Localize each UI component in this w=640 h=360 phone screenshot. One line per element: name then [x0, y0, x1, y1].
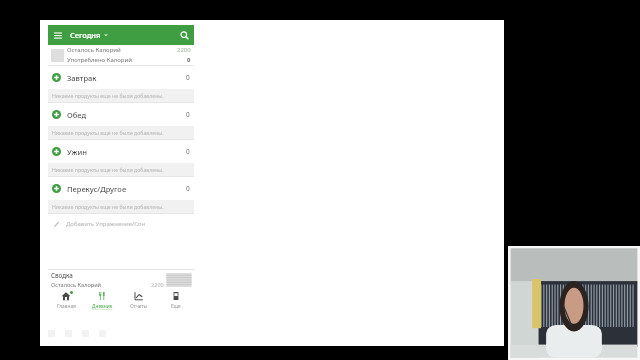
staticText: 2200 [177, 46, 191, 54]
button[interactable]: Сегодня [68, 30, 110, 40]
button[interactable]: Еще [157, 289, 194, 311]
button[interactable]: Главная [48, 289, 84, 311]
button[interactable]: Дневник [84, 289, 120, 311]
staticText: Обед [67, 110, 87, 120]
button[interactable]: Обед [48, 103, 194, 126]
staticText: Дневник [92, 303, 113, 310]
staticText: Употреблено Калорий [67, 56, 132, 64]
staticText: Никакие продукты еще не были добавлены. [52, 92, 164, 99]
staticText: Осталось Калорий [67, 46, 121, 54]
button[interactable]: Добавить Упражнение/Сон [48, 214, 194, 234]
staticText: Добавить Упражнение/Сон [66, 220, 146, 228]
button[interactable]: Сводка [48, 270, 194, 289]
staticText: 0 [187, 56, 191, 64]
button[interactable]: Menu [48, 25, 68, 45]
staticText: 0 [186, 73, 190, 82]
button[interactable]: Отчеты [120, 289, 157, 311]
staticText: Отчеты [130, 303, 148, 310]
staticText: Никакие продукты еще не были добавлены. [52, 129, 164, 136]
staticText: Сводка [51, 271, 73, 279]
staticText: Никакие продукты еще не были добавлены. [52, 166, 164, 173]
staticText: Осталось Калорий [51, 281, 102, 289]
staticText: Еще [171, 303, 181, 310]
button[interactable]: Перекус/Другое [48, 177, 194, 200]
staticText: Сегодня [70, 30, 101, 40]
staticText: Ужин [67, 147, 87, 157]
staticText: Главная [57, 303, 76, 310]
button[interactable]: Ужин [48, 140, 194, 163]
staticText: Никакие продукты еще не были добавлены. [52, 203, 164, 210]
staticText: 2200 [151, 281, 164, 289]
staticText: 0 [186, 110, 190, 119]
button[interactable]: Search [174, 25, 194, 45]
staticText: Завтрак [67, 73, 97, 83]
button[interactable]: Завтрак [48, 66, 194, 89]
staticText: Перекус/Другое [67, 184, 127, 194]
staticText: 0 [186, 147, 190, 156]
staticText: 0 [186, 184, 190, 193]
